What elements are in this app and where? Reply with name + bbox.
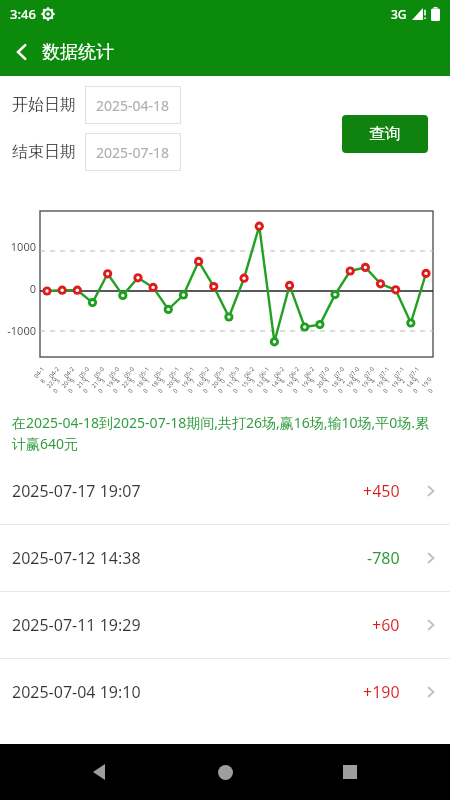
staticText: 05-23 20:00 — [197, 363, 232, 395]
staticText: 2025-07-18 — [96, 143, 170, 162]
staticText: 05-05 18:00 — [122, 363, 157, 395]
staticText: 在2025-04-18到2025-07-18期间,共打26场,赢16场,输10场… — [12, 413, 438, 454]
staticText: 07-03 19:00 — [347, 363, 382, 395]
staticText: 数据统计 — [42, 41, 114, 64]
staticText: 06-14 14:00 — [257, 363, 292, 395]
staticText: +450 — [363, 480, 400, 502]
staticText: 2025-07-04 19:10 — [12, 681, 141, 703]
staticText: 结束日期 — [12, 142, 76, 162]
staticText: 07-04 19:00 — [362, 363, 397, 395]
staticText: 0 — [0, 281, 36, 296]
staticText: 开始日期 — [12, 95, 76, 115]
staticText: 3:46 — [10, 5, 36, 23]
staticText: 06-29 20:00 — [302, 363, 337, 395]
button[interactable]: Recents — [326, 748, 374, 796]
staticText: 07-17 19:00 — [407, 363, 442, 395]
button[interactable]: 查询 — [342, 115, 428, 153]
staticText: 05-16 19:00 — [167, 363, 202, 395]
staticText: 05-30 11:00 — [212, 363, 247, 395]
staticText: 05-17 16:00 — [182, 363, 217, 395]
button[interactable]: 2025-07-18 — [85, 133, 181, 171]
button[interactable]: 2025-07-04 19:10 — [0, 659, 450, 725]
button[interactable]: 2025-07-11 19:29 — [0, 592, 450, 658]
staticText: 2025-07-11 19:29 — [12, 614, 141, 636]
staticText: 05-03 19:00 — [92, 363, 127, 395]
staticText: 07-11 19:00 — [377, 363, 412, 395]
staticText: 1000 — [0, 239, 36, 254]
staticText: 04-29 21:00 — [62, 363, 97, 395]
staticText: 查询 — [369, 124, 401, 144]
button[interactable]: 2025-04-18 — [85, 86, 181, 124]
staticText: 06-26 19:00 — [272, 363, 307, 395]
staticText: 07-02 19:00 — [332, 363, 367, 395]
staticText: 07-12 14:00 — [392, 363, 427, 395]
staticText: 05-11 18:00 — [137, 363, 172, 395]
staticText: 3G — [391, 6, 407, 22]
staticText: +190 — [363, 681, 400, 703]
staticText: 2025-07-12 14:38 — [12, 547, 141, 569]
staticText: 04-23 20:00 — [47, 363, 82, 395]
staticText: -780 — [367, 547, 400, 569]
staticText: 07-01 18:00 — [317, 363, 352, 395]
staticText: 05-31 15:00 — [227, 363, 262, 395]
button[interactable]: Back — [0, 30, 44, 74]
staticText: 06-27 19:00 — [287, 363, 322, 395]
staticText: 2025-04-18 — [96, 96, 170, 115]
button[interactable]: Back — [77, 748, 125, 796]
staticText: 05-01 21:00 — [77, 363, 112, 395]
staticText: 04-18 22:00 — [32, 363, 67, 395]
staticText: +60 — [372, 614, 400, 636]
staticText: 05-04 22:00 — [107, 363, 142, 395]
staticText: 2025-07-17 19:07 — [12, 480, 141, 502]
button[interactable]: 2025-07-17 19:07 — [0, 458, 450, 524]
staticText: 06-23 13:00 — [242, 363, 277, 395]
button[interactable]: 2025-07-12 14:38 — [0, 525, 450, 591]
button[interactable]: Home — [201, 748, 249, 796]
staticText: -1000 — [0, 323, 36, 338]
staticText: 05-13 20:00 — [152, 363, 187, 395]
